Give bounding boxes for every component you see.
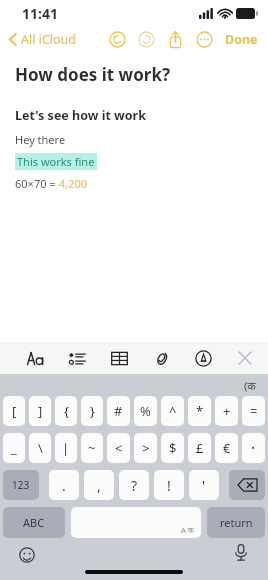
button[interactable]: } bbox=[81, 396, 103, 426]
staticText: ? bbox=[131, 476, 138, 495]
button[interactable]: + bbox=[215, 396, 238, 426]
button[interactable]: € bbox=[215, 433, 238, 463]
button[interactable]: > bbox=[134, 433, 157, 463]
staticText: Hey there bbox=[15, 132, 66, 147]
staticText: 123 bbox=[12, 478, 30, 492]
button[interactable]: ] bbox=[29, 396, 51, 426]
staticText: _ bbox=[11, 439, 17, 457]
button[interactable]: More bbox=[194, 29, 215, 50]
staticText: A bbox=[181, 525, 186, 535]
staticText: | bbox=[62, 439, 70, 457]
button[interactable]: Table bbox=[106, 345, 132, 371]
button[interactable]: Done bbox=[221, 28, 262, 51]
staticText: ABC bbox=[23, 515, 45, 530]
button[interactable]: , bbox=[84, 470, 114, 500]
staticText: £ bbox=[196, 439, 204, 457]
button[interactable]: * bbox=[188, 396, 211, 426]
button[interactable]: Close bbox=[232, 345, 258, 371]
staticText: € bbox=[223, 439, 231, 457]
button[interactable]: Backspace bbox=[229, 470, 265, 500]
button[interactable]: $ bbox=[161, 433, 184, 463]
button[interactable]: Redo bbox=[136, 29, 157, 50]
button[interactable]: # bbox=[107, 396, 130, 426]
staticText: How does it work? bbox=[15, 63, 171, 86]
button[interactable]: Emoji bbox=[16, 544, 38, 566]
staticText: 11:41 bbox=[22, 4, 58, 23]
button[interactable]: < bbox=[107, 433, 130, 463]
staticText: This works fine bbox=[17, 154, 95, 169]
staticText: = bbox=[250, 402, 258, 420]
staticText: . bbox=[62, 476, 66, 495]
button[interactable]: % bbox=[134, 396, 157, 426]
button[interactable]: Text format bbox=[22, 345, 48, 371]
staticText: · bbox=[251, 437, 256, 459]
staticText: > bbox=[142, 439, 150, 457]
staticText: return bbox=[220, 515, 253, 530]
staticText: ' bbox=[202, 476, 206, 495]
staticText: } bbox=[90, 402, 95, 420]
staticText: * bbox=[196, 402, 204, 420]
staticText: { bbox=[64, 402, 69, 420]
button[interactable]: ? bbox=[119, 470, 149, 500]
staticText: ^ bbox=[169, 402, 177, 420]
button[interactable]: ^ bbox=[161, 396, 184, 426]
staticText: ! bbox=[167, 476, 171, 495]
button[interactable]: [ bbox=[3, 396, 25, 426]
staticText: [ bbox=[12, 402, 17, 420]
button[interactable]: £ bbox=[188, 433, 211, 463]
button[interactable]: ' bbox=[189, 470, 219, 500]
button[interactable]: Markup bbox=[190, 345, 216, 371]
staticText: \ bbox=[38, 439, 43, 457]
button[interactable]: return bbox=[207, 507, 265, 538]
button[interactable]: 123 bbox=[3, 470, 39, 500]
staticText: % bbox=[140, 402, 151, 420]
button[interactable]: Share bbox=[165, 29, 186, 50]
staticText: Done bbox=[225, 31, 258, 48]
button[interactable]: = bbox=[242, 396, 265, 426]
button[interactable]: Undo bbox=[107, 29, 128, 50]
button[interactable]: ABC bbox=[3, 507, 65, 538]
staticText: All iCloud bbox=[21, 31, 77, 48]
button[interactable]: { bbox=[55, 396, 77, 426]
button[interactable]: Checklist bbox=[64, 345, 90, 371]
staticText: (क bbox=[244, 378, 256, 393]
staticText: $ bbox=[169, 439, 177, 457]
staticText: ~ bbox=[88, 439, 96, 457]
staticText: ] bbox=[38, 402, 43, 420]
button[interactable]: · bbox=[242, 433, 265, 463]
staticText: Let's see how it work bbox=[15, 107, 146, 124]
button[interactable]: Dictation bbox=[230, 542, 252, 564]
staticText: , bbox=[97, 476, 101, 495]
staticText: + bbox=[223, 402, 231, 420]
button[interactable]: All iCloud bbox=[6, 28, 80, 51]
button[interactable]: \ bbox=[29, 433, 51, 463]
button[interactable]: ~ bbox=[81, 433, 103, 463]
button[interactable]: _ bbox=[3, 433, 25, 463]
button[interactable]: | bbox=[55, 433, 77, 463]
staticText: < bbox=[115, 439, 123, 457]
button[interactable]: Attach bbox=[148, 345, 174, 371]
staticText: क bbox=[188, 525, 194, 535]
button[interactable]: Space bbox=[71, 507, 201, 538]
button[interactable]: ! bbox=[154, 470, 184, 500]
staticText: # bbox=[114, 402, 123, 420]
button[interactable]: . bbox=[49, 470, 79, 500]
staticText: 60×70 = bbox=[15, 176, 59, 191]
staticText: 4,200 bbox=[59, 176, 88, 191]
